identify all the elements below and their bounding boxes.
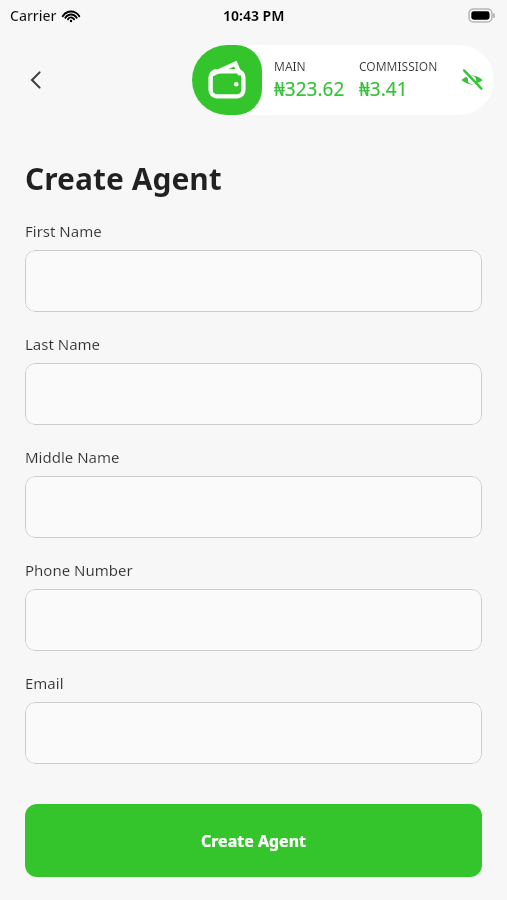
staticText: ₦3.41	[359, 76, 408, 102]
button[interactable]	[25, 702, 482, 764]
staticText: Middle Name	[25, 447, 120, 467]
staticText: 10:43 PM	[223, 6, 285, 25]
staticText: COMMISSION	[359, 58, 438, 74]
staticText: MAIN	[274, 58, 306, 74]
button[interactable]	[25, 589, 482, 651]
staticText: Carrier	[10, 6, 57, 25]
button[interactable]	[25, 250, 482, 312]
button[interactable]: Create Agent	[25, 804, 482, 877]
staticText: Email	[25, 673, 64, 693]
staticText: ₦323.62	[274, 76, 345, 102]
staticText: Create Agent	[201, 830, 306, 852]
staticText: First Name	[25, 221, 102, 241]
button[interactable]	[25, 363, 482, 425]
staticText: Create Agent	[25, 158, 222, 199]
button[interactable]	[25, 476, 482, 538]
staticText: Phone Number	[25, 560, 133, 580]
button[interactable]: MAIN	[192, 45, 494, 115]
button[interactable]: Back	[14, 58, 58, 102]
staticText: Last Name	[25, 334, 101, 354]
button[interactable]: Hide balance	[450, 58, 494, 102]
